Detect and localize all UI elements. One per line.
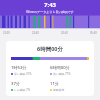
staticText: 22:00: [3, 31, 10, 35]
staticText: 05:40: [90, 31, 97, 35]
staticText: 6時間00分: [50, 65, 70, 71]
staticText: 6時間00分: [37, 45, 63, 53]
staticText: 浅い睡眠 77%: [53, 72, 71, 76]
staticText: レム睡眠 7%: [14, 88, 30, 92]
button[interactable]: 1時53分: [11, 65, 50, 76]
staticText: 23:40: [32, 31, 39, 35]
staticText: 1時53分: [11, 65, 27, 71]
button[interactable]: 6時間00分: [6, 41, 94, 96]
staticText: 37分: [11, 81, 20, 87]
button[interactable]: Sleep stage chart: [0, 14, 100, 29]
staticText: 7:43: [44, 1, 56, 9]
staticText: 深い睡眠 31%: [14, 72, 32, 76]
button[interactable]: 11分: [50, 81, 89, 92]
staticText: 8時間のデータよりも良い睡眠です: [26, 10, 74, 14]
button[interactable]: 37分: [11, 81, 50, 92]
staticText: 覚醒状態: [53, 88, 65, 92]
staticText: 11分: [50, 81, 59, 87]
button[interactable]: 6時間00分: [50, 65, 89, 76]
staticText: 02:40: [61, 31, 68, 35]
